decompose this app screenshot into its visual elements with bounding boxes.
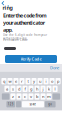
button[interactable]: p [55,78,61,84]
staticText: z [12,94,14,99]
button[interactable]: z [10,93,15,100]
staticText: Verification Code [3,38,28,42]
staticText: o [51,78,53,84]
button[interactable]: d [16,86,21,92]
button[interactable]: i [43,78,49,84]
button[interactable]: t [25,78,30,84]
staticText: h [36,86,38,91]
staticText: p [57,78,59,84]
button[interactable]: a [4,86,9,92]
staticText: k [48,86,50,91]
button[interactable]: Back [0,0,6,7]
button[interactable]: j [40,86,46,92]
button[interactable]: 123 [6,101,15,107]
button[interactable]: y [31,78,37,84]
staticText: Use the 6-digit code from your authentic… [3,33,47,40]
staticText: f [24,86,25,91]
button[interactable]: l [52,86,58,92]
button[interactable]: v [28,93,33,100]
button[interactable]: f [22,86,27,92]
staticText: ring [3,4,13,11]
staticText: j [42,86,43,91]
staticText: b [36,94,38,99]
button[interactable] [2,93,9,100]
button[interactable]: Verify Code [5,55,57,63]
staticText: m [47,94,51,99]
button[interactable]: s [10,86,15,92]
button[interactable]: k [46,86,52,92]
button[interactable]: n [40,93,46,100]
button[interactable]: h [34,86,40,92]
staticText: Verify Code [20,56,41,62]
button[interactable]: q [1,78,6,84]
button[interactable]: w [7,78,12,84]
staticText: 123 [8,102,14,106]
staticText: d [18,86,20,91]
staticText: w [8,78,11,84]
button[interactable]: x [16,93,21,100]
staticText: r [21,78,23,84]
staticText: e [15,78,17,84]
staticText: n [42,94,44,99]
staticText: x [18,94,20,99]
button[interactable]: go [45,101,56,107]
staticText: v [30,94,32,99]
staticText: g [30,86,32,91]
staticText: l [54,86,55,91]
staticText: c [24,94,26,99]
button[interactable]: g [28,86,33,92]
button[interactable]: c [22,93,27,100]
button[interactable]: r [19,78,24,84]
button[interactable] [52,93,60,100]
staticText: space [29,102,36,106]
staticText: go [48,102,52,106]
staticText: Enter the code from your authenticator a… [3,12,46,33]
button[interactable]: u [37,78,43,84]
button[interactable]: m [46,93,52,100]
staticText: Done [50,65,59,70]
button[interactable]: b [34,93,40,100]
button[interactable]: o [49,78,55,84]
staticText: a [6,86,8,91]
button[interactable]: Done [50,64,62,72]
staticText: u [39,78,41,84]
button[interactable]: e [13,78,18,84]
staticText: y [33,78,35,84]
staticText: q [3,78,5,84]
button[interactable]: space [22,101,44,107]
staticText: s [12,86,14,91]
